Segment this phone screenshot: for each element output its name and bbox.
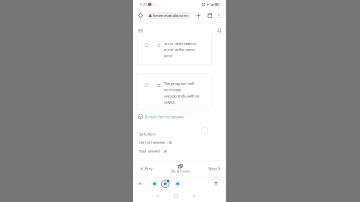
staticText: Solution: [139, 131, 156, 137]
staticText: Your answer : A: [139, 148, 167, 154]
button[interactable]: More options: [215, 9, 222, 22]
button[interactable]: Switch tabs: [206, 9, 214, 22]
button[interactable]: C.: [137, 34, 212, 64]
staticText: D.: [158, 83, 162, 88]
button[interactable]: Recent apps: [152, 190, 163, 202]
staticText: unexpectedly with no: [164, 93, 199, 99]
button[interactable]: Upload: [213, 178, 218, 190]
button[interactable]: Expand autofill suggestions: [137, 178, 142, 190]
staticText: Prev: [145, 166, 153, 171]
button[interactable]: Home: [170, 190, 181, 202]
button[interactable]: Back: [189, 190, 200, 202]
button[interactable]: D.: [137, 73, 212, 109]
button[interactable]: Home: [136, 9, 144, 22]
staticText: limenmahala.com: [153, 13, 188, 18]
button[interactable]: Dis. & Forum: [169, 162, 192, 175]
staticText: Bravo! Correct answer.: [145, 114, 185, 119]
staticText: error at the same: [164, 47, 195, 52]
staticText: output.: [164, 99, 175, 105]
button[interactable]: Autofill suggestion, new: [161, 180, 170, 188]
button[interactable]: New tab: [194, 9, 202, 22]
staticText: terminate: [164, 87, 181, 92]
button[interactable]: Next: [206, 162, 222, 175]
staticText: time.: [164, 53, 173, 58]
button[interactable]: Prev: [138, 162, 155, 175]
staticText: Dis. & Forum: [171, 169, 190, 173]
button[interactable]: Notifications: [215, 28, 223, 33]
staticText: The program will: [164, 81, 194, 86]
button[interactable]: Autofill suggestion: [151, 181, 158, 187]
staticText: 9:30: [140, 2, 147, 7]
button[interactable]: Autofill suggestion: [174, 181, 181, 187]
staticText: Next: [208, 166, 216, 171]
staticText: Correct answer : A: [139, 140, 172, 145]
staticText: error and runtime: [164, 41, 196, 46]
staticText: C.: [158, 43, 161, 48]
button[interactable]: limenmahala.com: [146, 12, 191, 19]
button[interactable]: Open menu: [136, 28, 144, 33]
